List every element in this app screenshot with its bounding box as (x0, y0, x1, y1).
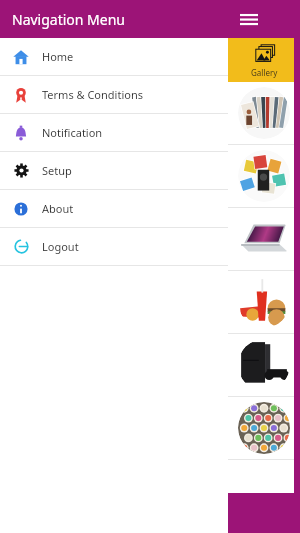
staticText: Setup (42, 163, 72, 178)
other: Home (13, 49, 29, 65)
other: Terms and conditions (13, 87, 29, 103)
other: Cupcakes photo (238, 402, 290, 454)
other: Food photo (238, 276, 290, 328)
button[interactable]: Cupcakes photo (228, 397, 300, 460)
staticText: Logout (42, 239, 79, 254)
staticText: Navigation Menu (12, 10, 126, 29)
other: Menu (240, 10, 258, 28)
other: Setup (14, 163, 29, 178)
other: Magazines photo (238, 87, 290, 139)
other: Laptop photo (238, 213, 290, 265)
staticText: Home (42, 49, 74, 64)
staticText: About (42, 201, 74, 216)
button[interactable]: Open navigation menu (234, 4, 264, 34)
button[interactable]: Notification (0, 114, 228, 152)
other: Photo collage (238, 150, 290, 202)
button[interactable]: Home (0, 38, 228, 76)
other: Gallery (254, 43, 276, 65)
button[interactable]: Magazines photo (228, 82, 300, 145)
other: Game console photo (238, 339, 290, 391)
button[interactable]: Photo collage (228, 145, 300, 208)
staticText: Terms & Conditions (42, 87, 143, 102)
staticText: Gallery (251, 67, 278, 78)
button[interactable]: Terms and conditions (0, 76, 228, 114)
other: About (14, 202, 28, 216)
button[interactable]: Laptop photo (228, 208, 300, 271)
button[interactable]: Game console photo (228, 334, 300, 397)
button[interactable]: Food photo (228, 271, 300, 334)
other: Notification (13, 125, 29, 141)
other: Logout (14, 239, 29, 254)
button[interactable]: Setup (0, 152, 228, 190)
button[interactable]: Gallery (228, 38, 300, 82)
button[interactable]: Logout (0, 228, 228, 266)
button[interactable]: About (0, 190, 228, 228)
staticText: Notification (42, 125, 103, 140)
